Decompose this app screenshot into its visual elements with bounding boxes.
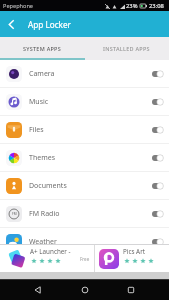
button[interactable]: Lock toggle [151,181,163,191]
staticText: A+ Launcher - [30,247,71,256]
button[interactable]: A+ Launcher - [0,245,94,272]
staticText: Weather [29,237,57,247]
staticText: Free [80,256,90,262]
staticText: Music [29,97,49,107]
button[interactable]: Pics Art [95,245,169,272]
staticText: 23% [126,2,138,10]
button[interactable]: Recent apps [123,282,139,298]
staticText: FM [12,212,17,216]
button[interactable]: Weather [0,228,169,255]
button[interactable]: Lock toggle [151,153,163,163]
button[interactable]: Documents [0,172,169,199]
button[interactable]: FM [0,200,169,227]
staticText: Files [29,125,44,135]
staticText: 23:08 [149,2,164,10]
button[interactable]: Navigate up [4,17,19,32]
staticText: Pics Art [123,247,146,256]
button[interactable]: Lock toggle [151,97,163,107]
staticText: Documents [29,181,67,191]
button[interactable]: Camera [0,60,169,87]
button[interactable]: Files [0,116,169,143]
staticText: Themes [29,153,56,163]
button[interactable]: Lock toggle [151,125,163,135]
button[interactable]: Back [30,282,46,298]
button[interactable]: Themes [0,144,169,171]
staticText: Camera [29,69,55,79]
button[interactable]: Music [0,88,169,115]
staticText: App Locker [28,19,71,30]
button[interactable]: INSTALLED APPS [84,37,169,60]
button[interactable]: Home [77,282,93,298]
button[interactable]: Lock toggle [151,209,163,219]
button[interactable]: SYSTEM APPS [0,37,84,60]
staticText: FM Radio [29,209,60,219]
staticText: INSTALLED APPS [103,45,150,52]
button[interactable]: Lock toggle [151,69,163,79]
staticText: Pepephone [3,2,34,10]
staticText: SYSTEM APPS [23,45,61,52]
button[interactable]: Lock toggle [151,237,163,247]
